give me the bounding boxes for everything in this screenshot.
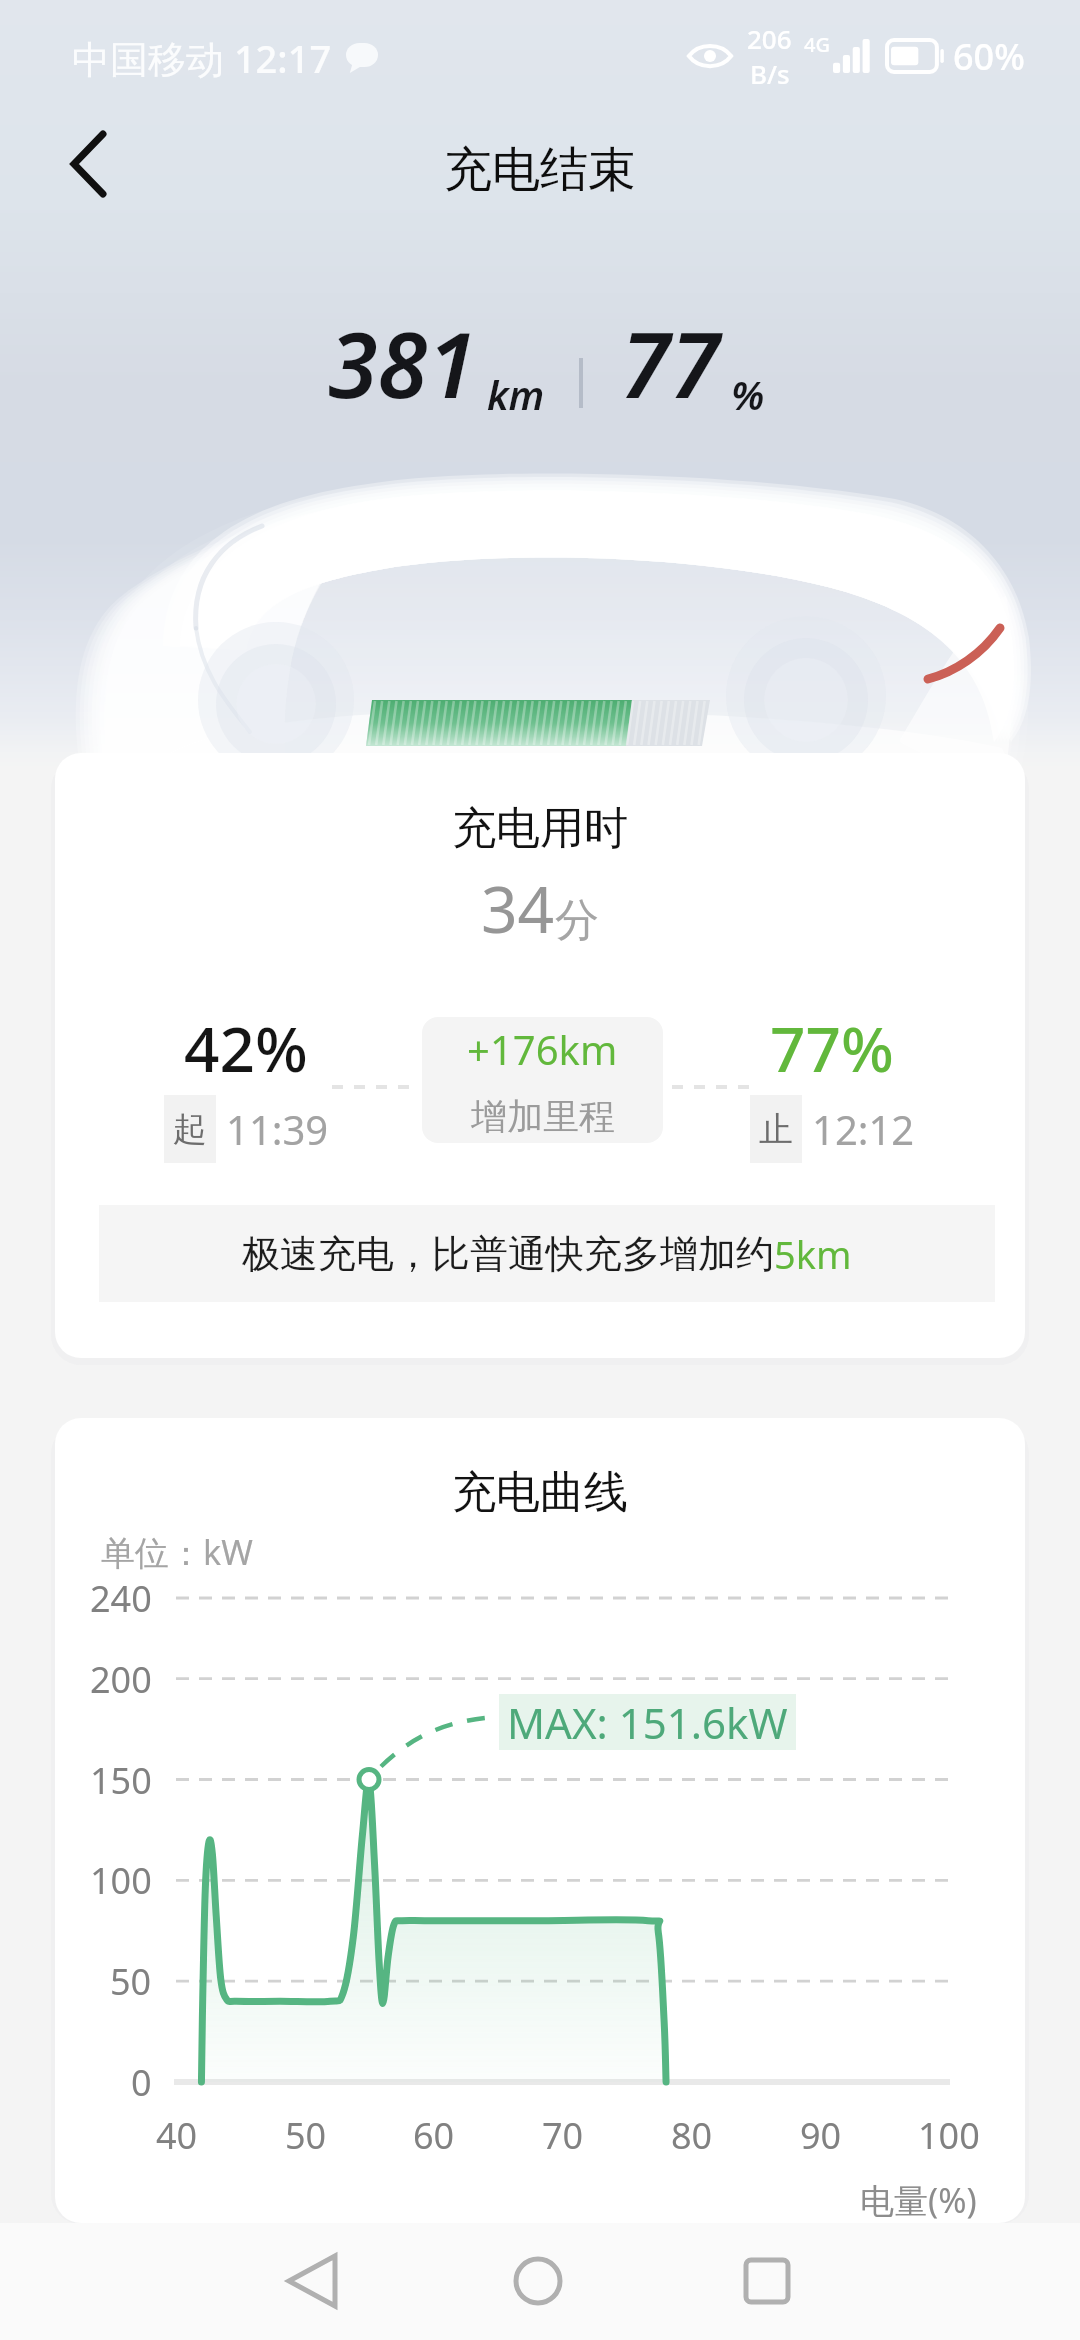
- staticText: 12:12: [812, 1102, 915, 1156]
- staticText: 100: [90, 1856, 152, 1905]
- staticText: 中国移动 12:17: [72, 32, 332, 84]
- staticText: +176km: [467, 1022, 618, 1076]
- staticText: 电量(%): [860, 2177, 977, 2223]
- staticText: 充电结束: [444, 140, 636, 200]
- staticText: 42%: [184, 1006, 308, 1090]
- staticText: 77%: [770, 1006, 894, 1090]
- staticText: 200: [90, 1655, 152, 1704]
- staticText: 80: [671, 2111, 713, 2160]
- staticText: 34: [481, 865, 555, 952]
- staticText: 150: [90, 1756, 152, 1805]
- staticText: 分: [555, 893, 599, 948]
- staticText: 充电用时: [452, 801, 628, 856]
- staticText: 60%: [953, 32, 1025, 81]
- staticText: 起: [173, 1108, 207, 1151]
- staticText: 5km: [774, 1228, 852, 1280]
- staticText: 40: [156, 2111, 198, 2160]
- staticText: %: [731, 367, 765, 421]
- staticText: 50: [110, 1957, 152, 2006]
- staticText: 70: [542, 2111, 584, 2160]
- staticText: 50: [285, 2111, 327, 2160]
- staticText: MAX: 151.6kW: [507, 1694, 788, 1750]
- staticText: 381: [328, 302, 477, 425]
- button[interactable]: Home: [483, 2226, 593, 2336]
- staticText: 单位：kW: [101, 1529, 253, 1575]
- button[interactable]: Back: [42, 118, 134, 210]
- staticText: 增加里程: [471, 1094, 615, 1139]
- staticText: 止: [759, 1108, 793, 1151]
- staticText: 极速充电，比普通快充多增加约: [242, 1230, 774, 1278]
- staticText: km: [487, 367, 545, 421]
- staticText: 11:39: [226, 1102, 329, 1156]
- staticText: B/s: [750, 56, 790, 91]
- staticText: 240: [90, 1574, 152, 1623]
- staticText: 60: [413, 2111, 455, 2160]
- staticText: 充电曲线: [452, 1465, 628, 1520]
- staticText: 77: [621, 302, 721, 425]
- button[interactable]: Back: [258, 2226, 368, 2336]
- button[interactable]: Recents: [712, 2226, 822, 2336]
- staticText: 206: [747, 21, 792, 56]
- staticText: 0: [131, 2058, 152, 2107]
- staticText: 100: [918, 2111, 980, 2160]
- staticText: 4G: [804, 31, 830, 58]
- staticText: 90: [800, 2111, 842, 2160]
